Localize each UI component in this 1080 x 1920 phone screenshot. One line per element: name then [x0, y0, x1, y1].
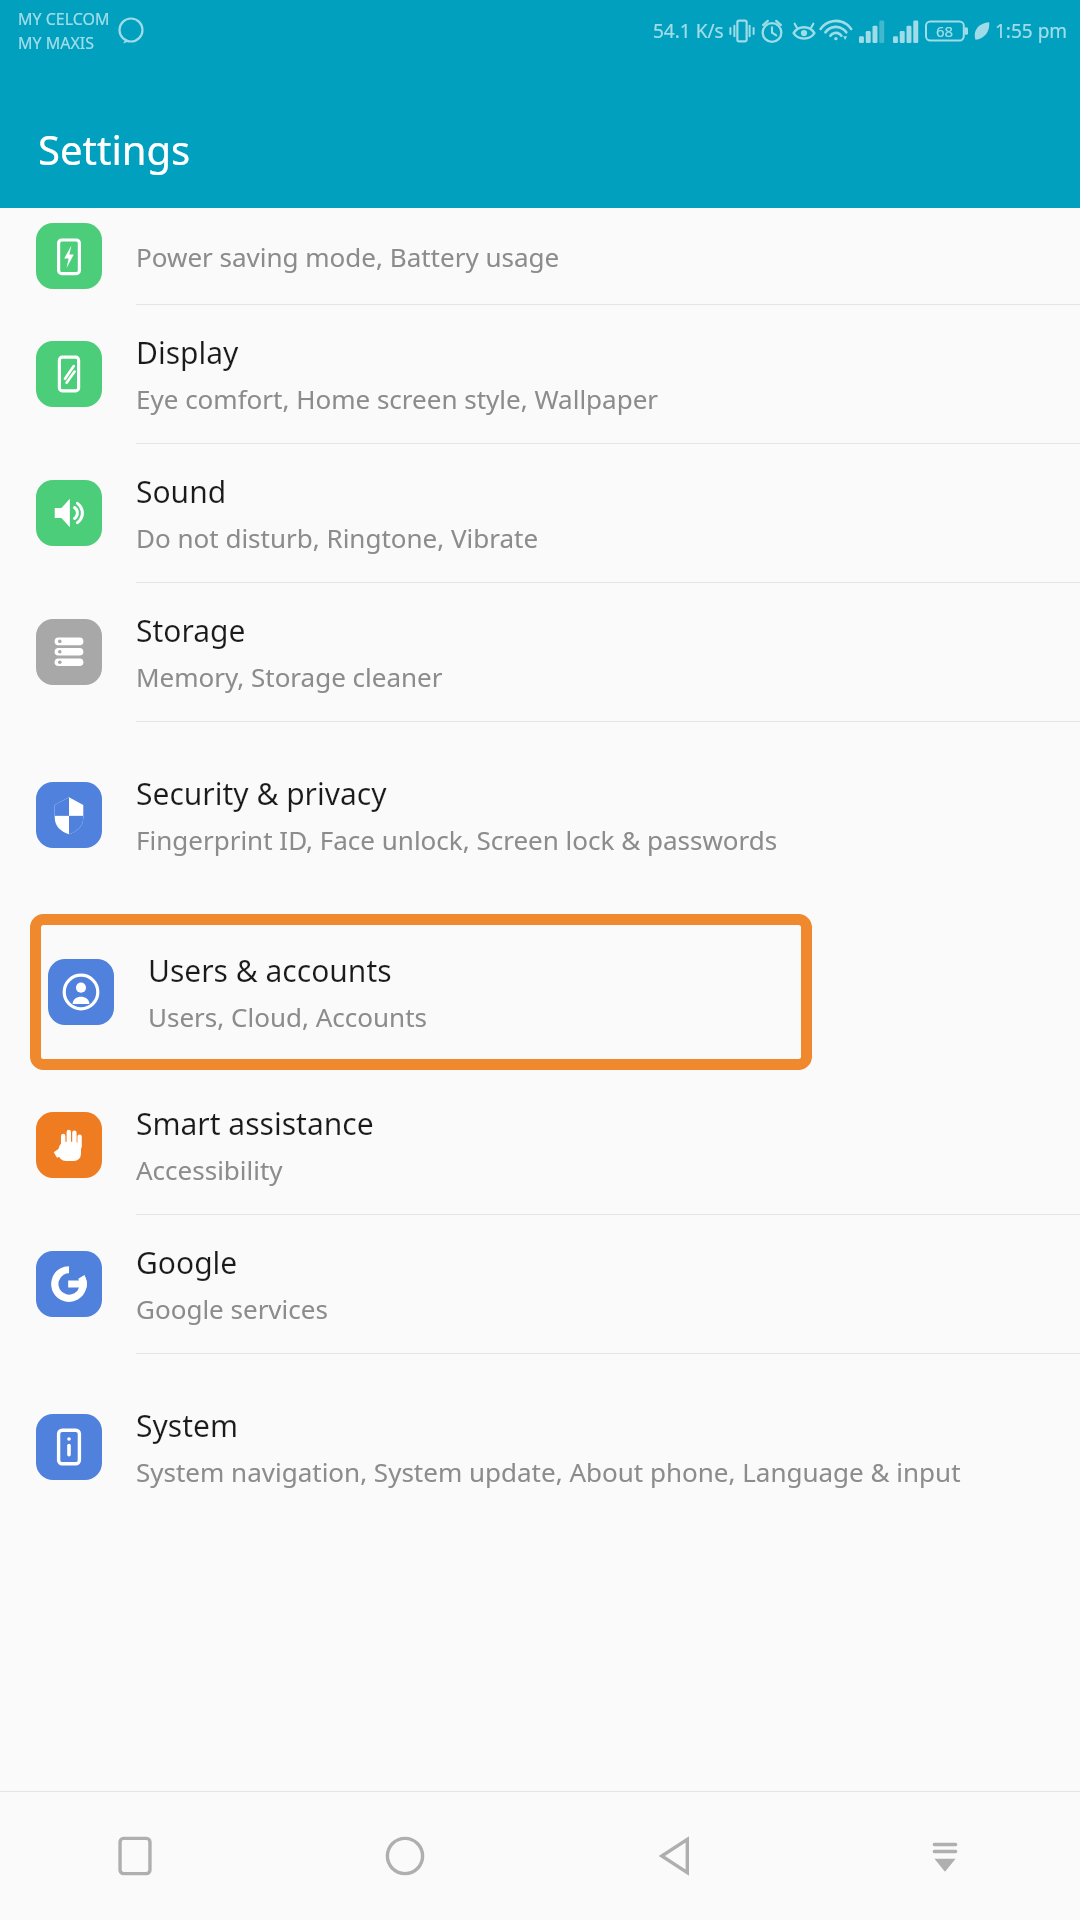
staticText: Users, Cloud, Accounts: [148, 999, 427, 1034]
button[interactable]: Sound: [0, 444, 1080, 582]
button[interactable]: Smart assistance: [0, 1076, 1080, 1214]
staticText: 68: [936, 21, 954, 41]
staticText: Google: [136, 1242, 238, 1283]
staticText: Google services: [136, 1291, 971, 1326]
staticText: MY MAXIS: [18, 32, 95, 54]
staticText: MY CELCOM: [18, 8, 110, 30]
button[interactable]: Power saving mode, Battery usage: [0, 208, 1080, 304]
staticText: System navigation, System update, About …: [136, 1454, 971, 1489]
staticText: Fingerprint ID, Face unlock, Screen lock…: [136, 822, 971, 857]
button[interactable]: Notifications: [810, 1792, 1080, 1920]
staticText: 54.1 K/s: [653, 18, 724, 44]
staticText: System: [136, 1405, 238, 1446]
staticText: Sound: [136, 471, 227, 512]
staticText: Storage: [136, 610, 246, 651]
button[interactable]: Home: [270, 1792, 540, 1920]
button[interactable]: Display: [0, 305, 1080, 443]
staticText: Display: [136, 332, 239, 373]
button[interactable]: Storage: [0, 583, 1080, 721]
staticText: Memory, Storage cleaner: [136, 659, 971, 694]
button[interactable]: Recents: [0, 1792, 270, 1920]
button[interactable]: Security & privacy: [0, 722, 1080, 908]
staticText: Accessibility: [136, 1152, 971, 1187]
staticText: Settings: [38, 122, 191, 176]
staticText: Users & accounts: [148, 950, 392, 991]
staticText: Eye comfort, Home screen style, Wallpape…: [136, 381, 971, 416]
button[interactable]: System: [0, 1354, 1080, 1540]
button[interactable]: Back: [540, 1792, 810, 1920]
staticText: Power saving mode, Battery usage: [136, 239, 971, 274]
staticText: Security & privacy: [136, 773, 387, 814]
staticText: Do not disturb, Ringtone, Vibrate: [136, 520, 971, 555]
staticText: Smart assistance: [136, 1103, 374, 1144]
button[interactable]: Google: [0, 1215, 1080, 1353]
staticText: 1:55 pm: [995, 18, 1068, 44]
button[interactable]: Users & accounts: [30, 914, 812, 1070]
